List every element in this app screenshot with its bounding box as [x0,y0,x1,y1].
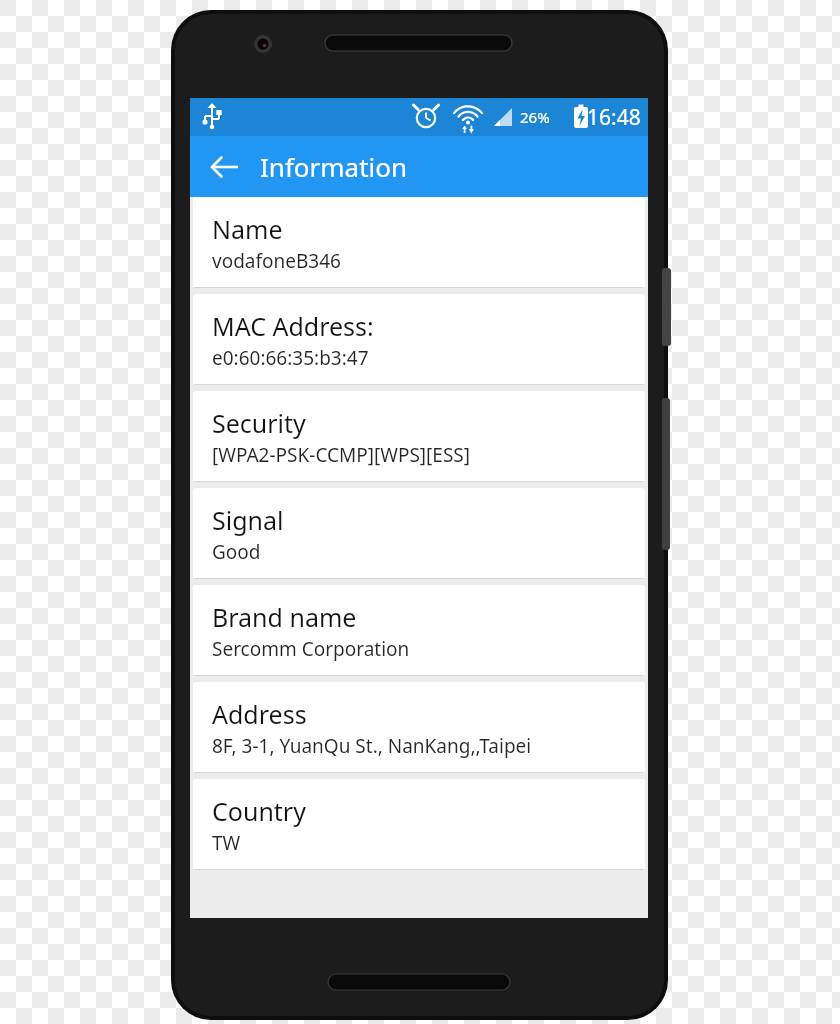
staticText: TW [212,830,241,856]
staticText: Signal [212,503,284,537]
staticText: 26% [520,107,550,127]
staticText: Address [212,697,307,731]
staticText: Security [212,406,306,440]
button[interactable]: Name [193,197,645,288]
staticText: Information [260,149,408,184]
staticText: MAC Address: [212,309,374,343]
staticText: e0:60:66:35:b3:47 [212,345,369,371]
staticText: 8F, 3-1, YuanQu St., NanKang,,Taipei [212,733,532,759]
button[interactable]: Brand name [193,585,645,676]
staticText: 16:48 [587,103,641,132]
staticText: Good [212,539,261,565]
button[interactable]: Back [190,136,260,197]
button[interactable]: MAC Address: [193,294,645,385]
staticText: [WPA2-PSK-CCMP][WPS][ESS] [212,442,471,468]
staticText: vodafoneB346 [212,248,341,274]
staticText: Name [212,212,283,246]
button[interactable]: Security [193,391,645,482]
staticText: Sercomm Corporation [212,636,410,662]
button[interactable]: Country [193,779,645,870]
staticText: Country [212,794,306,828]
staticText: Brand name [212,600,357,634]
button[interactable]: Signal [193,488,645,579]
button[interactable]: Address [193,682,645,773]
